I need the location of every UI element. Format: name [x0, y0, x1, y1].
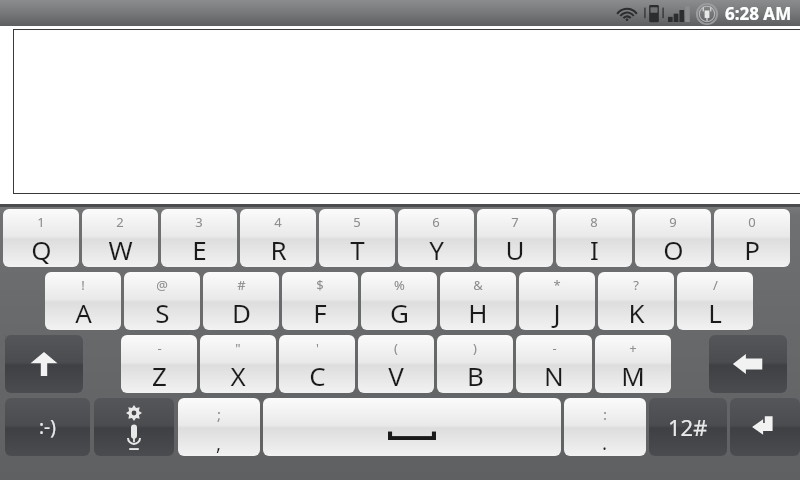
button[interactable]: /	[677, 272, 753, 330]
staticText: +	[629, 339, 637, 357]
staticText: J	[553, 295, 561, 330]
staticText: O	[663, 232, 684, 267]
staticText: P	[744, 232, 760, 267]
button[interactable]: +	[595, 335, 671, 393]
button[interactable]: 7	[477, 209, 553, 267]
staticText: W	[108, 232, 133, 267]
button[interactable]: "	[200, 335, 276, 393]
button[interactable]: ?	[598, 272, 674, 330]
button[interactable]: Shift	[5, 335, 83, 393]
button[interactable]: )	[437, 335, 513, 393]
staticText: V	[388, 358, 404, 393]
staticText: X	[230, 358, 246, 393]
staticText: :-)	[39, 414, 56, 440]
button[interactable]: 0	[714, 209, 790, 267]
staticText: U	[505, 232, 525, 267]
staticText: T	[350, 232, 365, 267]
staticText: 6:28 AM	[725, 2, 792, 25]
button[interactable]: !	[45, 272, 121, 330]
staticText: N	[544, 358, 564, 393]
button[interactable]: Enter	[730, 398, 800, 456]
staticText: Q	[31, 232, 52, 267]
staticText: "	[235, 339, 241, 357]
staticText: .	[602, 430, 608, 456]
button[interactable]: &	[440, 272, 516, 330]
staticText: '	[316, 339, 319, 357]
staticText: C	[309, 358, 326, 393]
button[interactable]: Backspace	[709, 335, 787, 393]
staticText: -	[157, 339, 162, 357]
staticText: ;	[217, 404, 222, 424]
button[interactable]: 12#	[649, 398, 727, 456]
staticText: Z	[152, 358, 167, 393]
staticText: R	[270, 232, 287, 267]
staticText: B	[467, 358, 484, 393]
staticText: :	[603, 404, 608, 424]
button[interactable]: Space	[263, 398, 561, 456]
staticText: !	[81, 276, 85, 294]
staticText: ,	[216, 430, 222, 456]
button[interactable]: 2	[82, 209, 158, 267]
button[interactable]: 3	[161, 209, 237, 267]
button[interactable]: (	[358, 335, 434, 393]
button[interactable]: 6	[398, 209, 474, 267]
staticText: E	[192, 232, 207, 267]
button[interactable]: 8	[556, 209, 632, 267]
button[interactable]: #	[203, 272, 279, 330]
staticText: L	[708, 295, 722, 330]
staticText: 12#	[668, 412, 708, 442]
staticText: -	[552, 339, 557, 357]
button[interactable]: -	[121, 335, 197, 393]
button[interactable]: 1	[3, 209, 79, 267]
staticText: 2	[116, 213, 124, 231]
staticText: 3	[195, 213, 203, 231]
staticText: A	[75, 295, 92, 330]
staticText: *	[553, 276, 561, 294]
button[interactable]: ;	[178, 398, 260, 456]
staticText: G	[390, 295, 409, 330]
button[interactable]: -	[516, 335, 592, 393]
staticText: 9	[669, 213, 677, 231]
staticText: 6	[432, 213, 440, 231]
staticText: /	[713, 276, 718, 294]
staticText: (	[394, 339, 398, 357]
button[interactable]: 5	[319, 209, 395, 267]
staticText: XDA	[4, 332, 22, 344]
staticText: ?	[633, 276, 639, 294]
staticText: D	[232, 295, 251, 330]
staticText: M	[621, 358, 645, 393]
button[interactable]: 4	[240, 209, 316, 267]
staticText: K	[628, 295, 645, 330]
button[interactable]: *	[519, 272, 595, 330]
button[interactable]: 9	[635, 209, 711, 267]
staticText: &	[473, 276, 483, 294]
button[interactable]: Emoji	[5, 398, 90, 456]
staticText: Y	[429, 232, 444, 267]
button[interactable]: $	[282, 272, 358, 330]
button[interactable]: Voice input and settings	[94, 398, 174, 456]
button[interactable]: %	[361, 272, 437, 330]
staticText: 8	[590, 213, 598, 231]
staticText: I	[590, 232, 599, 267]
button[interactable]: :	[564, 398, 646, 456]
staticText: @	[156, 276, 168, 294]
staticText: $	[316, 276, 324, 294]
staticText: #	[237, 276, 246, 294]
staticText: H	[468, 295, 488, 330]
staticText: )	[473, 339, 477, 357]
staticText: F	[313, 295, 327, 330]
button[interactable]: @	[124, 272, 200, 330]
staticText: 0	[748, 213, 756, 231]
staticText: 4	[274, 213, 282, 231]
button[interactable]: '	[279, 335, 355, 393]
staticText: %	[394, 276, 405, 294]
staticText: 7	[511, 213, 519, 231]
staticText: 1	[37, 213, 45, 231]
staticText: S	[155, 295, 170, 330]
staticText: 5	[353, 213, 361, 231]
